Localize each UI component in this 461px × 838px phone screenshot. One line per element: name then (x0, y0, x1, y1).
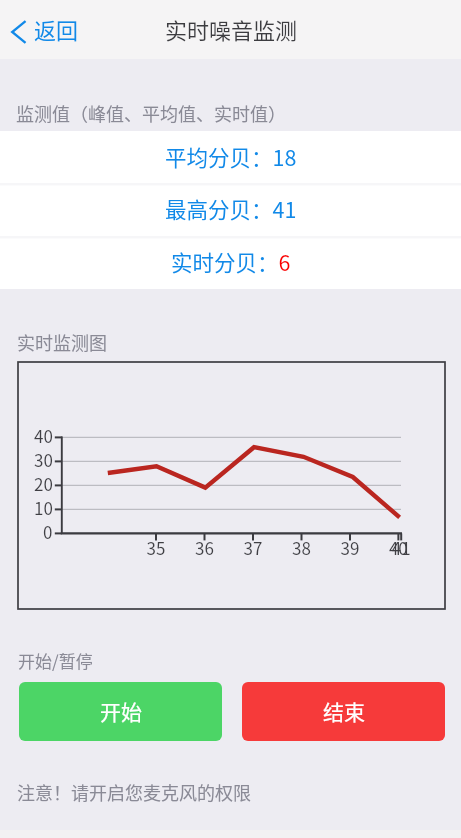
staticText: 返回 (34, 13, 79, 45)
staticText: 开始/暂停 (18, 648, 93, 673)
staticText: 实时噪音监测 (165, 13, 298, 45)
staticText: 实时分贝：6 (171, 246, 291, 277)
button[interactable]: 开始 (19, 682, 222, 741)
staticText: 注意！请开启您麦克风的权限 (17, 779, 251, 805)
button[interactable]: 实时分贝：6 (0, 236, 461, 289)
button[interactable]: 最高分贝：41 (0, 183, 461, 236)
button[interactable]: Back (0, 6, 93, 52)
staticText: 实时监测图 (17, 329, 107, 355)
staticText: 监测值（峰值、平均值、实时值） (16, 100, 286, 126)
button[interactable]: 平均分贝：18 (0, 131, 461, 183)
staticText: 平均分贝：18 (165, 141, 297, 172)
other: Back (11, 20, 26, 44)
staticText: 开始 (100, 696, 142, 726)
button[interactable]: 结束 (242, 682, 445, 741)
staticText: 最高分贝：41 (165, 193, 297, 224)
staticText: 结束 (323, 696, 365, 726)
